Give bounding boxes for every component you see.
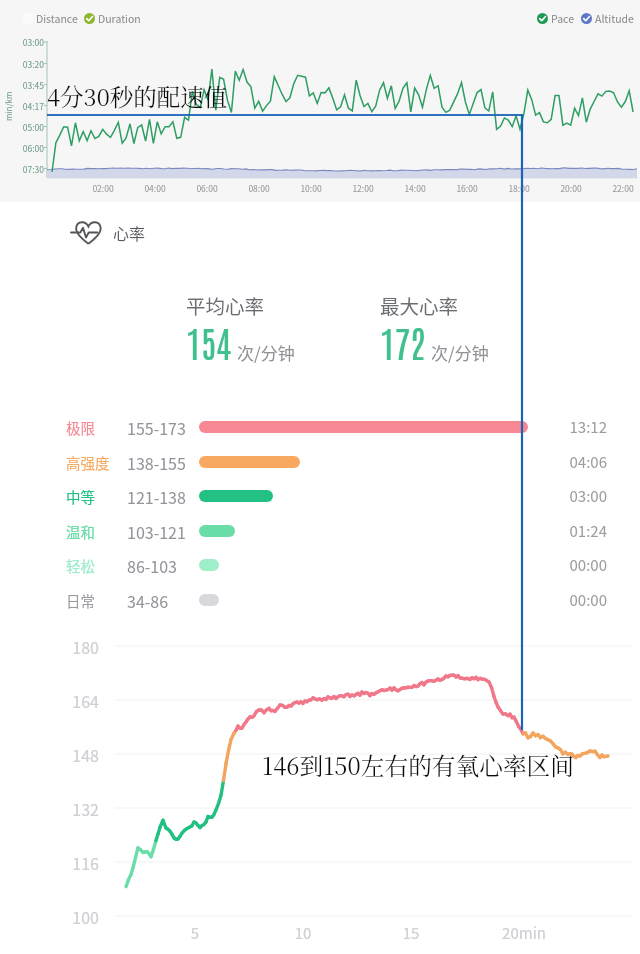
staticText: 121-138 [127,485,186,508]
staticText: 03:45 [14,79,44,91]
staticText: 138-155 [127,451,186,474]
button[interactable]: 平均心率 [186,291,265,338]
button[interactable]: 极限 [66,413,607,441]
staticText: 16:00 [447,182,487,194]
staticText: 中等 [66,486,95,507]
staticText: 最大心率 [380,291,459,319]
staticText: 03:00 [14,36,44,48]
button[interactable]: 最大心率 [380,291,459,338]
staticText: 18:00 [499,182,539,194]
staticText: 116 [59,851,99,874]
staticText: 06:00 [14,142,44,154]
staticText: 06:00 [187,182,227,194]
staticText: 次/分钟 [431,340,489,365]
staticText: 132 [59,797,99,820]
staticText: 22:00 [603,182,640,194]
staticText: 04:00 [135,182,175,194]
staticText: 15 [371,922,451,944]
button[interactable]: 心率 [71,220,146,245]
staticText: 03:00 [569,485,607,507]
button[interactable]: Duration [84,9,141,28]
button[interactable]: Altitude [581,9,634,28]
staticText: 180 [59,635,99,658]
staticText: 次/分钟 [237,340,295,365]
staticText: 07:30 [14,163,44,175]
staticText: 05:00 [14,121,44,133]
staticText: 100 [59,905,99,928]
staticText: 轻松 [66,555,95,576]
staticText: 155-173 [127,416,186,439]
staticText: min/km [3,91,15,121]
staticText: Altitude [595,11,634,26]
staticText: 86-103 [127,554,177,577]
staticText: 4分30秒的配速值 [47,79,228,113]
staticText: 08:00 [239,182,279,194]
staticText: Duration [98,11,141,26]
staticText: 00:00 [569,554,607,576]
staticText: 心率 [113,221,146,244]
staticText: 146到150左右的有氧心率区间 [262,748,574,782]
staticText: 03:20 [14,58,44,70]
button[interactable]: 中等 [66,482,607,510]
staticText: 34-86 [127,589,169,612]
staticText: 日常 [66,590,95,611]
button[interactable]: Pace [537,9,574,28]
staticText: 12:00 [343,182,383,194]
staticText: 10:00 [291,182,331,194]
staticText: 01:24 [569,520,607,542]
staticText: 00:00 [569,589,607,611]
staticText: 13:12 [569,416,607,438]
staticText: 103-121 [127,520,186,543]
button[interactable]: 日常 [66,586,607,614]
staticText: 5 [155,922,235,944]
staticText: 172 [380,318,426,365]
staticText: Distance [36,11,78,26]
staticText: 14:00 [395,182,435,194]
staticText: 04:06 [569,451,607,473]
staticText: Pace [551,11,574,26]
button[interactable]: 轻松 [66,551,607,579]
staticText: 温和 [66,521,95,542]
staticText: 148 [59,743,99,766]
staticText: 高强度 [66,452,110,473]
staticText: 04:17 [14,100,44,112]
staticText: 10 [263,922,343,944]
button[interactable]: 高强度 [66,448,607,476]
staticText: 154 [186,318,232,365]
staticText: 20min [484,922,564,944]
staticText: 平均心率 [186,291,265,319]
staticText: 20:00 [551,182,591,194]
staticText: 02:00 [83,182,123,194]
staticText: 极限 [66,417,95,438]
staticText: 164 [59,689,99,712]
button[interactable]: Distance [22,9,78,28]
button[interactable]: 温和 [66,517,607,545]
